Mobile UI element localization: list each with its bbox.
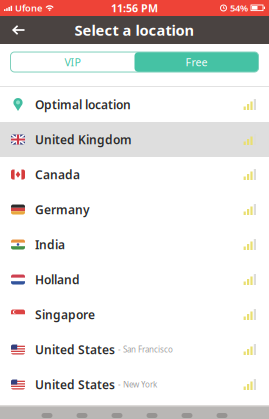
button[interactable]: United States [0, 367, 269, 402]
staticText: Ufone [15, 2, 42, 14]
button[interactable]: Back [0, 16, 33, 44]
button[interactable]: United Kingdom [0, 122, 269, 157]
staticText: - San Francisco [118, 344, 173, 355]
button[interactable]: United States [0, 332, 269, 367]
button[interactable]: Free [134, 52, 258, 72]
staticText: Holland [35, 271, 80, 287]
staticText: VIP [64, 55, 80, 69]
button[interactable]: VIP [10, 52, 134, 72]
button[interactable]: India [0, 227, 269, 262]
staticText: United States [35, 341, 115, 357]
button[interactable]: Holland [0, 262, 269, 297]
staticText: 11:56 PM [111, 1, 158, 15]
staticText: Canada [35, 166, 80, 182]
button[interactable]: Optimal location [0, 87, 269, 122]
button[interactable]: Singapore [0, 297, 269, 332]
staticText: - New York [118, 379, 157, 390]
button[interactable]: Germany [0, 192, 269, 227]
staticText: India [35, 236, 65, 252]
staticText: Germany [35, 201, 90, 217]
staticText: Singapore [35, 306, 95, 322]
staticText: United Kingdom [35, 131, 132, 147]
staticText: Optimal location [35, 96, 131, 112]
staticText: Select a location [74, 20, 194, 40]
staticText: United States [35, 376, 115, 392]
staticText: 54% [230, 2, 248, 14]
button[interactable]: Canada [0, 157, 269, 192]
staticText: Free [185, 55, 207, 69]
